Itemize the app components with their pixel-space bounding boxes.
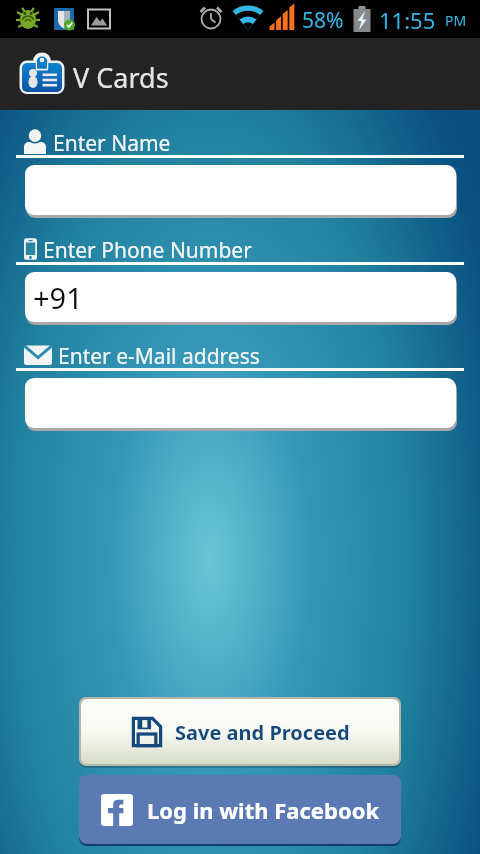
staticText: PM (445, 11, 467, 30)
staticText: Enter Name (53, 129, 171, 155)
staticText: Log in with Facebook (147, 795, 380, 825)
staticText: +91 (33, 278, 83, 317)
button[interactable]: Save and Proceed (81, 699, 399, 764)
staticText: V Cards (73, 59, 169, 96)
staticText: 58% (302, 6, 344, 35)
button[interactable] (25, 165, 456, 215)
button[interactable]: Log in with Facebook (79, 775, 401, 844)
button[interactable]: +91 (25, 272, 456, 322)
button[interactable] (25, 378, 456, 428)
staticText: Enter e-Mail address (58, 342, 260, 368)
staticText: 11:55 (379, 5, 436, 35)
staticText: Save and Proceed (175, 719, 350, 746)
staticText: Enter Phone Number (43, 236, 252, 262)
other: V Cards (18, 50, 66, 98)
